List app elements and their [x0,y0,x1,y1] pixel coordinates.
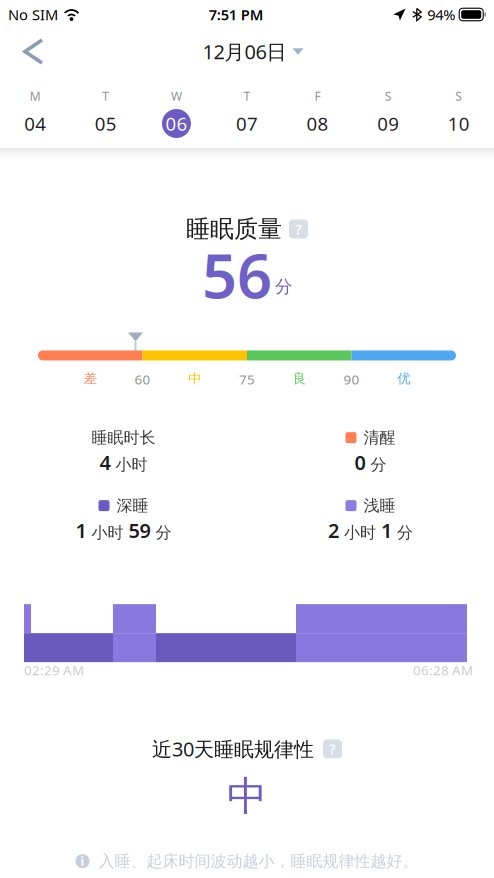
staticText: 分 [370,455,386,474]
staticText: 4 [99,449,110,475]
staticText: 良 [293,370,306,387]
button[interactable]: T [71,90,141,138]
button[interactable]: S [423,90,494,138]
staticText: 近30天睡眠规律性 [152,736,314,762]
button[interactable]: S [353,90,423,138]
staticText: 清醒 [363,428,395,447]
staticText: 60 [134,370,150,388]
staticText: 浅睡 [363,496,395,515]
staticText: 深睡 [116,496,148,515]
staticText: S [385,88,392,104]
staticText: M [30,88,41,104]
staticText: 7:51 PM [209,5,264,24]
staticText: ? [329,739,336,759]
button[interactable]: Back [0,31,56,72]
staticText: 睡眠时长 [91,428,155,447]
staticText: 1 [381,517,392,543]
staticText: ? [295,219,302,239]
staticText: 06:28 AM [413,661,473,679]
staticText: 分 [397,523,413,542]
staticText: 小时 [115,455,147,474]
button[interactable]: Help [289,219,308,238]
staticText: 2 [328,517,339,543]
button[interactable]: T [212,90,282,138]
staticText: 02:29 AM [24,661,84,679]
staticText: T [243,88,250,104]
staticText: 12月06日 [202,38,286,65]
staticText: 59 [128,517,150,543]
staticText: 分 [155,523,171,542]
staticText: 06 [165,111,187,136]
staticText: 中 [188,370,201,387]
staticText: 差 [84,370,97,387]
staticText: 90 [343,370,359,388]
button[interactable]: 12月06日 [192,32,313,71]
button[interactable]: Help [323,739,342,758]
staticText: 08 [307,111,329,136]
staticText: 10 [448,111,470,136]
staticText: S [455,88,462,104]
staticText: 0 [354,449,365,475]
staticText: 小时 [344,523,376,542]
staticText: 07 [236,111,258,136]
staticText: W [171,88,182,104]
staticText: 小时 [91,523,123,542]
button[interactable]: W [141,90,212,138]
staticText: 睡眠质量 [186,214,282,244]
staticText: 05 [95,111,117,136]
staticText: F [315,88,321,104]
staticText: 75 [239,370,255,388]
staticText: i [80,853,84,869]
staticText: 入睡、起床时间波动越小，睡眠规律性越好。 [98,851,418,871]
staticText: 94% [427,5,455,24]
staticText: 56 [202,234,272,315]
staticText: No SIM [8,5,58,24]
staticText: 分 [275,276,292,297]
button[interactable]: F [282,90,353,138]
staticText: T [102,88,109,104]
staticText: 优 [397,370,410,387]
staticText: 中 [227,772,267,821]
staticText: 1 [75,517,86,543]
button[interactable]: M [0,90,71,138]
staticText: 09 [377,111,399,136]
staticText: 04 [24,111,46,136]
